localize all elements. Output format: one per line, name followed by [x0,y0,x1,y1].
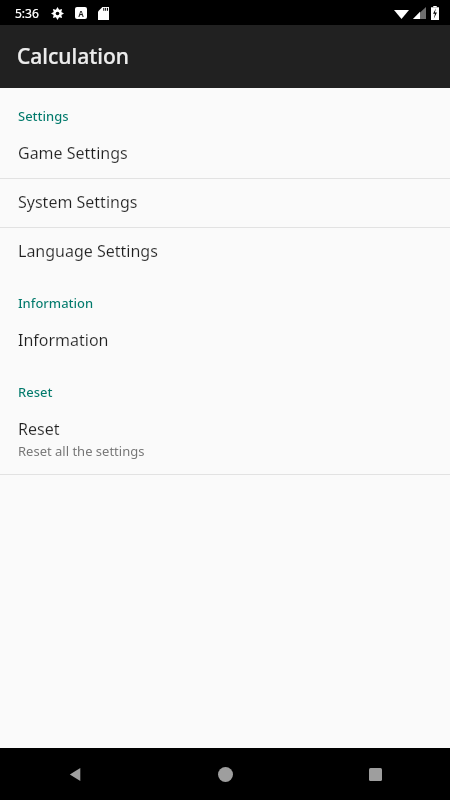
button[interactable]: Information [0,317,450,365]
staticText: Calculation [17,42,129,71]
staticText: 5:36 [15,5,39,21]
button[interactable]: System Settings [0,179,450,227]
staticText: Game Settings [18,142,128,164]
staticText: Reset [18,418,60,440]
staticText: Settings [18,107,69,125]
staticText: System Settings [18,191,138,213]
button[interactable]: Recent apps [300,748,450,800]
button[interactable]: Game Settings [0,130,450,178]
button[interactable]: Home [150,748,300,800]
button[interactable]: Language Settings [0,228,450,276]
button[interactable]: Reset [0,406,450,474]
staticText: Information [18,294,94,312]
staticText: Language Settings [18,240,158,262]
staticText: A [78,8,84,19]
staticText: Information [18,329,109,351]
button[interactable]: Back [0,748,150,800]
staticText: Reset [18,383,53,401]
staticText: Reset all the settings [18,442,145,460]
